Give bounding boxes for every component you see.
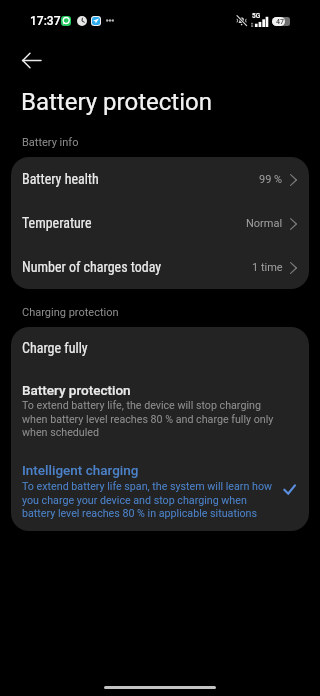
- staticText: Battery protection: [21, 88, 212, 116]
- staticText: 99 %: [259, 173, 283, 186]
- button[interactable]: Battery protection: [11, 371, 309, 448]
- staticText: Temperature: [22, 215, 92, 231]
- staticText: 17:37: [30, 14, 61, 28]
- staticText: 5G: [252, 12, 261, 20]
- button[interactable]: Number of charges today: [11, 245, 309, 289]
- staticText: Intelligent charging: [22, 462, 139, 478]
- staticText: 47: [276, 18, 284, 26]
- button[interactable]: Battery health: [11, 157, 309, 201]
- button[interactable]: Back: [13, 42, 50, 79]
- staticText: Battery health: [22, 171, 99, 187]
- staticText: Charging protection: [22, 306, 119, 319]
- staticText: To extend battery life, the device will …: [22, 399, 274, 438]
- staticText: Battery protection: [22, 382, 131, 398]
- staticText: 1 time: [252, 261, 283, 274]
- staticText: Normal: [246, 217, 283, 230]
- staticText: To extend battery life span, the system …: [22, 480, 273, 519]
- staticText: Number of charges today: [22, 259, 162, 275]
- button[interactable]: Intelligent charging: [11, 448, 309, 531]
- staticText: Charge fully: [22, 340, 88, 356]
- button[interactable]: Charge fully: [11, 327, 309, 371]
- button[interactable]: Temperature: [11, 201, 309, 245]
- staticText: Battery info: [22, 136, 79, 149]
